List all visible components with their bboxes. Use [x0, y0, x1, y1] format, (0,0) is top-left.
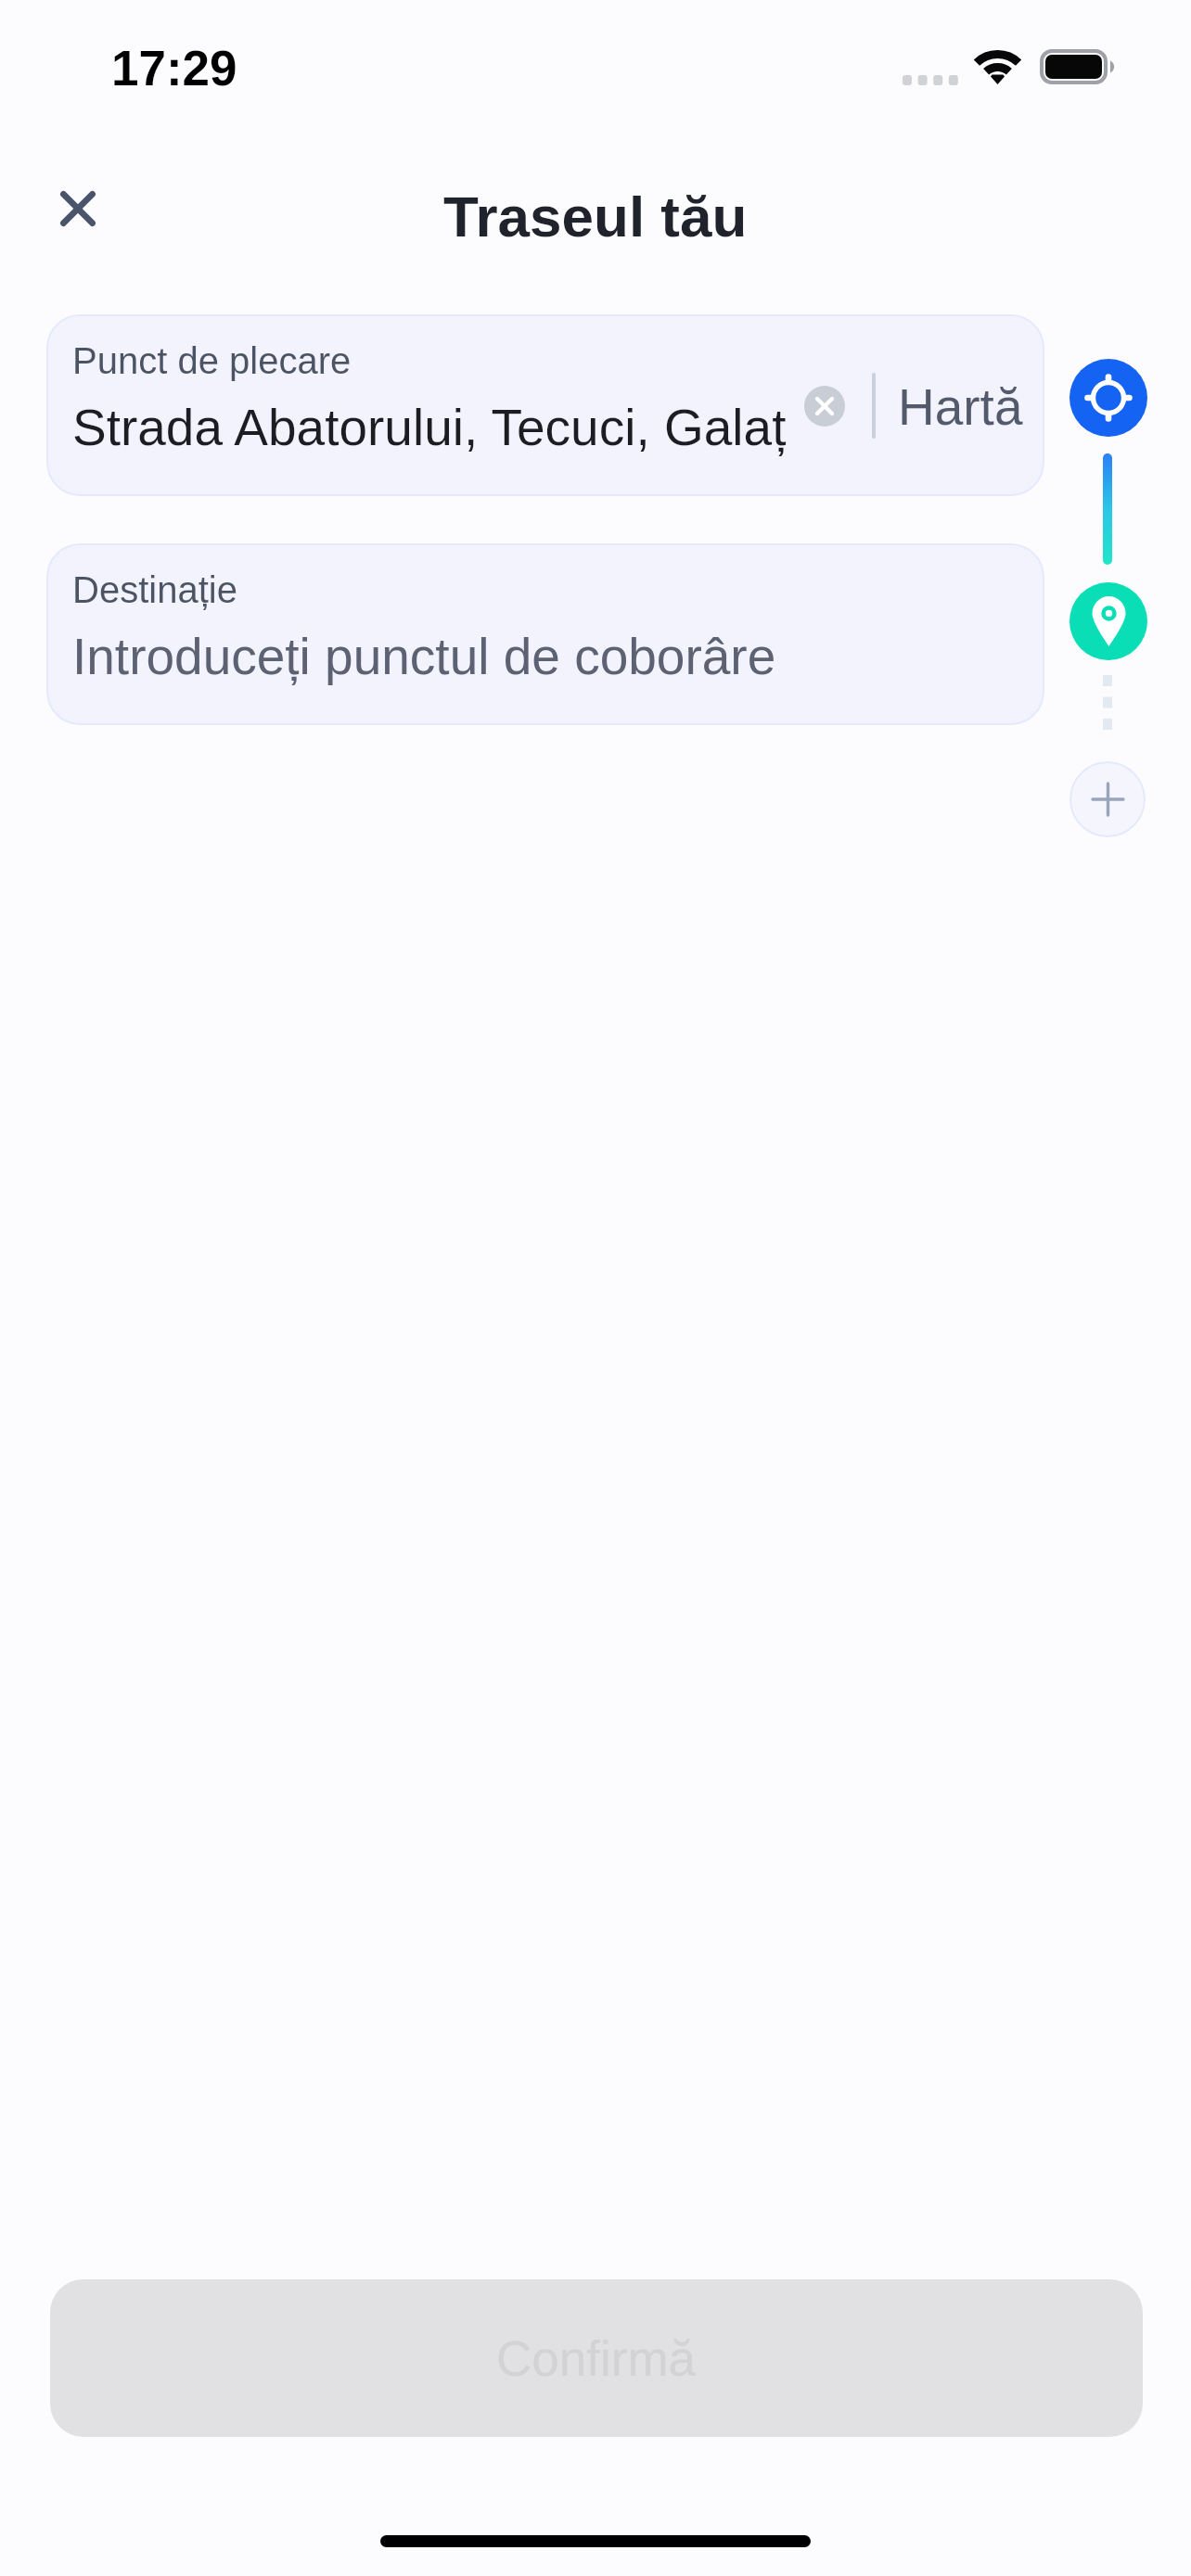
staticText: Destinație: [72, 569, 237, 611]
button[interactable]: Departure point field: [46, 314, 1044, 496]
button[interactable]: Destination field: [46, 543, 1044, 725]
staticText: Confirmă: [496, 2331, 697, 2386]
staticText: Strada Abatorului, Tecuci, Galaț: [72, 399, 796, 455]
button[interactable]: Close: [37, 168, 119, 249]
button[interactable]: Clear departure point: [804, 386, 845, 427]
button[interactable]: Add stop: [1069, 761, 1146, 837]
button[interactable]: Hartă: [895, 363, 1025, 449]
staticText: Introduceți punctul de coborâre: [72, 628, 776, 684]
button[interactable]: Use current location: [1069, 359, 1147, 437]
staticText: 17:29: [111, 41, 237, 96]
button[interactable]: Destination marker: [1069, 582, 1147, 660]
staticText: Hartă: [898, 378, 1023, 435]
button[interactable]: Confirmă: [50, 2279, 1143, 2437]
staticText: Traseul tău: [443, 185, 748, 249]
staticText: Punct de plecare: [72, 340, 352, 382]
